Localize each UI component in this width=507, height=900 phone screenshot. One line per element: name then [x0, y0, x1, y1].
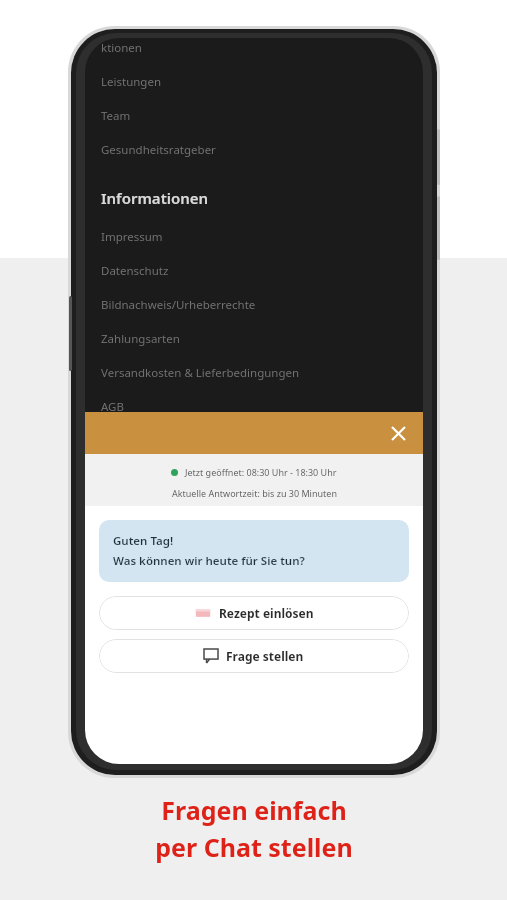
- button[interactable]: Zahlungsarten: [101, 331, 423, 347]
- staticText: Aktuelle Antwortzeit: bis zu 30 Minuten: [172, 487, 337, 499]
- button[interactable]: Widerrufsbelehrung: [101, 433, 423, 449]
- button[interactable]: ktionen: [101, 40, 423, 56]
- staticText: ktionen: [101, 40, 142, 56]
- button[interactable]: Menü: [387, 745, 413, 756]
- button[interactable]: Guten Tag!: [99, 520, 409, 582]
- staticText: Rezept einlösen: [219, 605, 314, 621]
- button[interactable]: Frage stellen: [99, 639, 409, 673]
- staticText: Guten Tag!: [113, 533, 174, 549]
- button[interactable]: AGB: [101, 399, 423, 415]
- staticText: Versandkosten & Lieferbedingungen: [101, 365, 300, 381]
- button[interactable]: Datenschutz: [101, 263, 423, 279]
- staticText: AGB: [101, 399, 124, 415]
- button[interactable]: Versandkosten & Lieferbedingungen: [101, 365, 423, 381]
- staticText: Team: [101, 108, 131, 124]
- staticText: Was können wir heute für Sie tun?: [113, 553, 305, 569]
- staticText: Datenschutz: [101, 263, 169, 279]
- button[interactable]: Schließen: [385, 420, 411, 446]
- staticText: Informationen: [101, 188, 209, 208]
- staticText: Leistungen: [101, 74, 162, 90]
- button[interactable]: Team: [101, 108, 423, 124]
- button[interactable]: Impressum: [101, 229, 423, 245]
- staticText: Jetzt geöffnet: 08:30 Uhr - 18:30 Uhr: [185, 466, 337, 478]
- button[interactable]: Bildnachweis/Urheberrechte: [101, 297, 423, 313]
- staticText: Impressum: [101, 229, 163, 245]
- staticText: Bildnachweis/Urheberrechte: [101, 297, 256, 313]
- staticText: Frage stellen: [226, 648, 304, 664]
- button[interactable]: Gesundheitsratgeber: [101, 142, 423, 158]
- button[interactable]: Informationen: [101, 188, 423, 208]
- button[interactable]: Rezept einlösen: [99, 596, 409, 630]
- button[interactable]: Startseite: [95, 745, 135, 756]
- staticText: per Chat stellen: [155, 830, 353, 864]
- staticText: Fragen einfach: [161, 793, 347, 827]
- staticText: Gesundheitsratgeber: [101, 142, 216, 158]
- staticText: Zahlungsarten: [101, 331, 180, 347]
- button[interactable]: Leistungen: [101, 74, 423, 90]
